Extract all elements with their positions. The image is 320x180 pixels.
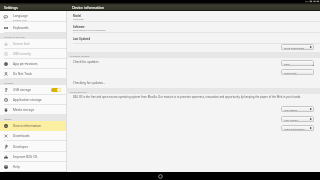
staticText: More information [284,46,305,49]
staticText: 1.1 GB available [13,112,32,115]
staticText: Screen lock [13,42,30,46]
staticText: App permissions [13,62,38,66]
button[interactable]: Developer [0,142,66,152]
button[interactable]: Application storage [0,95,66,105]
staticText: USB storage [13,88,32,92]
staticText: Help [13,165,20,169]
button[interactable]: Checking for updates… [73,80,106,85]
button[interactable]: Home [157,173,164,180]
button[interactable]: Screen lock [0,39,66,49]
staticText: Settings [4,5,18,10]
button[interactable]: Language [0,11,66,22]
staticText: English (US) [13,18,27,21]
staticText: Media storage [13,108,35,112]
button[interactable]: Your Rights [281,106,314,112]
staticText: No SIM card [13,56,28,59]
button[interactable]: Check now [281,69,314,75]
staticText: Developer [13,145,29,149]
staticText: Application storage [13,98,42,102]
button[interactable]: USB storage [0,85,66,95]
staticText: Downloads [13,134,30,138]
staticText: Your Rights [284,108,298,111]
staticText: Unknown [73,17,84,20]
staticText: About B2G OS [70,90,87,93]
button[interactable]: Downloads [0,131,66,141]
button[interactable]: SIM security [0,49,66,59]
button[interactable]: Keyboards [0,22,66,33]
staticText: Device [4,117,12,120]
staticText: Language [13,14,28,18]
button[interactable]: Improve B2G OS [0,152,66,162]
staticText: Your Privacy [284,118,299,121]
button[interactable]: Software [66,22,320,33]
staticText: Model [73,14,82,18]
staticText: Boot2Gecko 3.0.0-prerelease [73,28,106,31]
staticText: Improve B2G OS [13,155,38,159]
staticText: Device information [72,5,105,10]
staticText: Disabled [13,46,24,49]
staticText: Disabled [13,92,24,95]
button[interactable]: App permissions [0,59,66,69]
button[interactable]: Last Updated [66,33,320,44]
staticText: Storage [4,81,14,84]
staticText: Device information [13,124,42,128]
button[interactable]: Device information [0,121,66,131]
button[interactable]: Do Not Track [0,69,66,79]
staticText: Do Not Track [13,72,33,76]
button[interactable]: Check for updates [73,59,99,65]
staticText: Software [73,25,85,29]
button[interactable]: Daily [281,60,314,66]
staticText: Check for updates [73,60,99,64]
staticText: 381 MB available [13,102,33,105]
button[interactable]: USB storage toggle [51,88,61,92]
staticText: SIM security [13,52,32,56]
button[interactable]: Help [0,162,66,172]
staticText: Check now [284,71,297,74]
staticText: Last Updated [73,37,91,41]
staticText: B2G OS is the free and open source opera… [73,95,302,99]
button[interactable]: Media storage [0,105,66,115]
button[interactable]: Model [66,11,320,22]
button[interactable]: Your Privacy [281,116,314,122]
button[interactable]: Legal Information [281,125,314,131]
staticText: Software update [70,54,90,57]
staticText: Keyboards [13,26,29,30]
button[interactable]: More information [281,44,314,50]
staticText: Privacy & Security [4,35,25,38]
staticText: Daily [284,62,290,65]
staticText: Legal Information [284,127,305,130]
staticText: Checking for updates… [73,81,106,85]
